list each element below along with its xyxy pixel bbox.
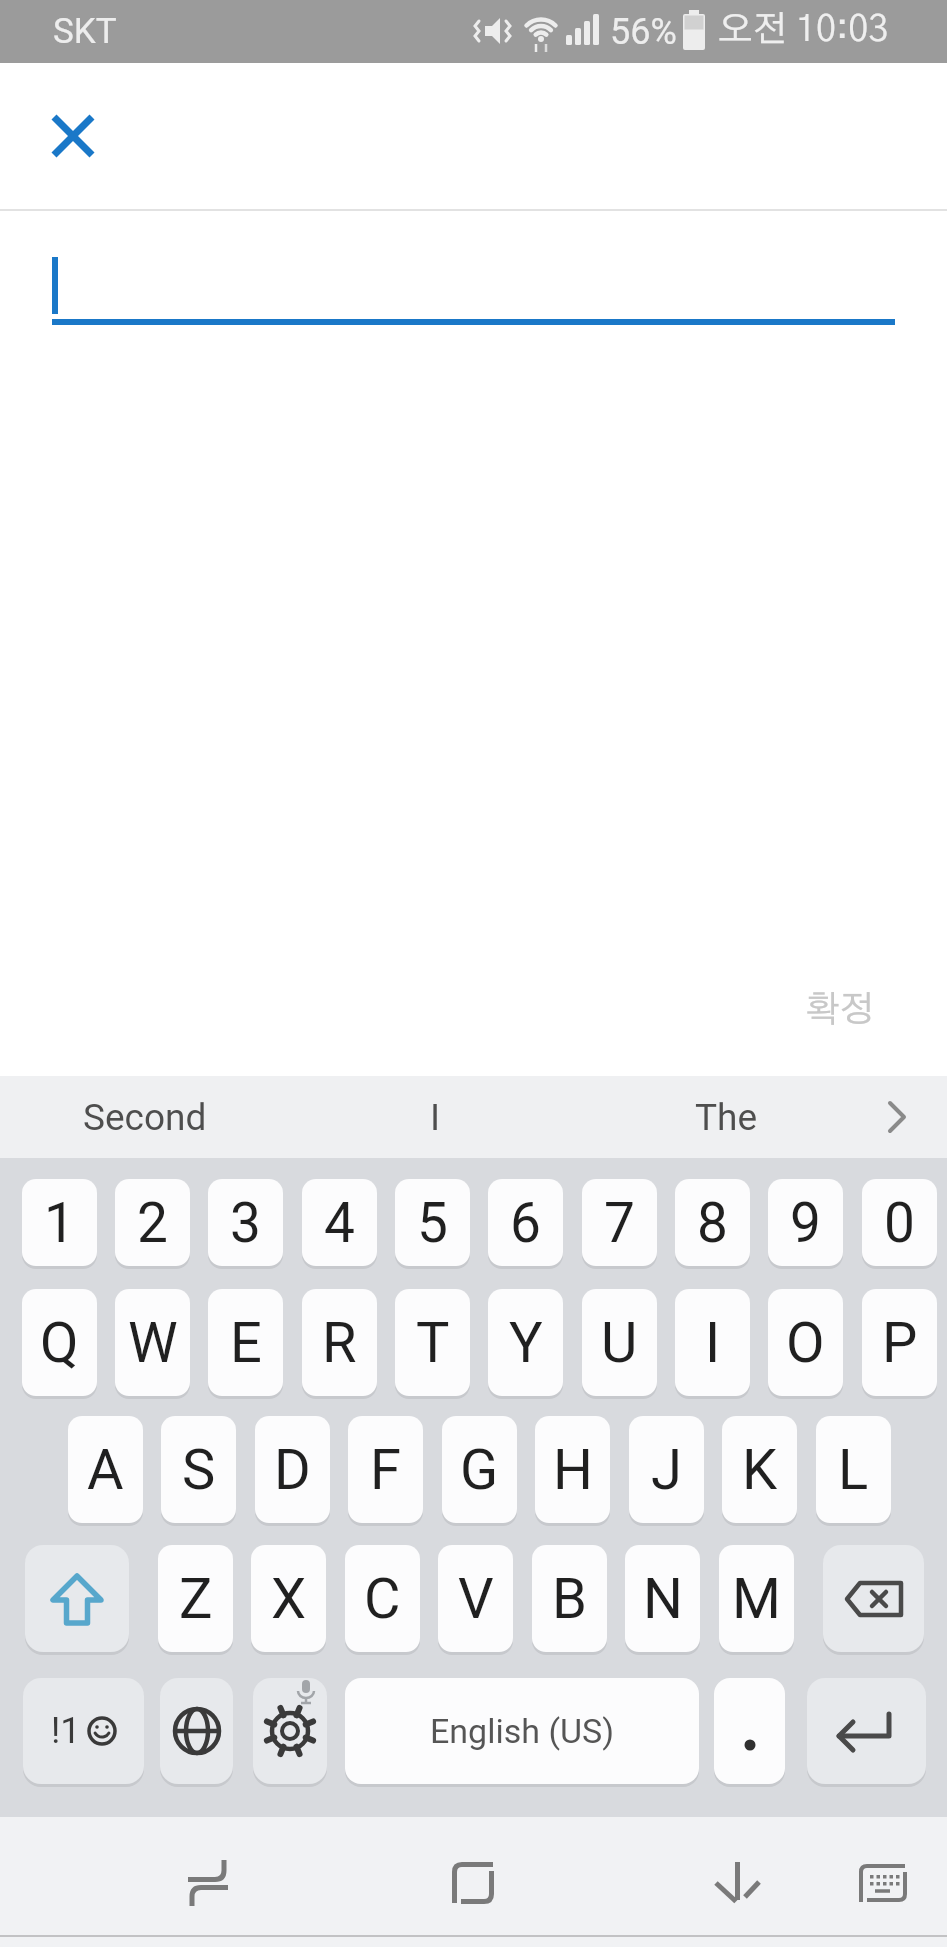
staticText: B <box>552 1566 587 1632</box>
staticText: Second <box>83 1096 207 1139</box>
staticText: English (US) <box>430 1711 615 1751</box>
button[interactable] <box>253 1678 327 1784</box>
button[interactable]: Q <box>22 1289 97 1396</box>
staticText: K <box>742 1437 778 1503</box>
button[interactable]: English (US) <box>345 1678 699 1784</box>
button[interactable]: Z <box>158 1545 233 1652</box>
button[interactable]: F <box>348 1416 423 1523</box>
staticText: A <box>87 1437 124 1503</box>
staticText: 4 <box>324 1191 355 1255</box>
button[interactable]: D <box>255 1416 330 1523</box>
button[interactable]: O <box>768 1289 843 1396</box>
button[interactable]: H <box>535 1416 610 1523</box>
staticText: The <box>695 1096 758 1139</box>
button[interactable]: G <box>442 1416 517 1523</box>
staticText: 8 <box>697 1191 728 1255</box>
staticText: Q <box>40 1310 79 1376</box>
button[interactable]: !1 <box>23 1678 144 1784</box>
staticText: 오전 10:03 <box>718 12 889 48</box>
staticText: X <box>271 1566 307 1632</box>
button[interactable]: L <box>816 1416 891 1523</box>
button[interactable]: 5 <box>395 1179 470 1266</box>
staticText: Y <box>509 1310 543 1376</box>
button[interactable]: 7 <box>582 1179 657 1266</box>
button[interactable]: Y <box>488 1289 563 1396</box>
staticText: L <box>838 1437 869 1503</box>
staticText: M <box>732 1566 781 1632</box>
staticText: 확정 <box>805 992 875 1028</box>
button[interactable]: E <box>208 1289 283 1396</box>
staticText: R <box>322 1310 357 1376</box>
button[interactable]: J <box>629 1416 704 1523</box>
button[interactable] <box>160 1678 233 1784</box>
staticText: U <box>601 1310 638 1376</box>
button[interactable]: T <box>395 1289 470 1396</box>
staticText: F <box>370 1437 401 1503</box>
button[interactable] <box>425 1835 520 1930</box>
staticText: C <box>364 1566 401 1632</box>
button[interactable]: 0 <box>862 1179 937 1266</box>
staticText: 5 <box>417 1191 448 1255</box>
button[interactable]: I <box>675 1289 750 1396</box>
button[interactable]: P <box>862 1289 937 1396</box>
button[interactable]: Second <box>0 1076 290 1158</box>
staticText: S <box>182 1437 216 1503</box>
button[interactable]: 4 <box>302 1179 377 1266</box>
button[interactable]: The <box>581 1076 872 1158</box>
button[interactable]: U <box>582 1289 657 1396</box>
button[interactable] <box>690 1835 785 1930</box>
staticText: G <box>460 1437 499 1503</box>
staticText: V <box>458 1566 494 1632</box>
staticText: W <box>128 1310 178 1376</box>
staticText: 1 <box>44 1191 75 1255</box>
button[interactable]: R <box>302 1289 377 1396</box>
button[interactable] <box>25 1545 129 1652</box>
button[interactable] <box>160 1835 255 1930</box>
staticText: 2 <box>137 1191 168 1255</box>
staticText: T <box>416 1310 450 1376</box>
button[interactable]: 8 <box>675 1179 750 1266</box>
button[interactable]: B <box>532 1545 607 1652</box>
staticText: !1 <box>51 1710 81 1752</box>
button[interactable]: 확정 <box>790 975 890 1045</box>
staticText: O <box>786 1310 825 1376</box>
button[interactable] <box>823 1545 924 1652</box>
button[interactable] <box>36 99 110 173</box>
button[interactable]: A <box>68 1416 143 1523</box>
staticText: I <box>705 1310 721 1376</box>
button[interactable]: W <box>115 1289 190 1396</box>
button[interactable]: S <box>161 1416 236 1523</box>
staticText: 9 <box>790 1191 821 1255</box>
staticText: Z <box>179 1566 213 1632</box>
button[interactable]: 9 <box>768 1179 843 1266</box>
button[interactable]: V <box>438 1545 513 1652</box>
staticText: 3 <box>230 1191 261 1255</box>
button[interactable]: 2 <box>115 1179 190 1266</box>
staticText: 0 <box>884 1191 915 1255</box>
button[interactable]: 3 <box>208 1179 283 1266</box>
button[interactable]: N <box>625 1545 700 1652</box>
button[interactable] <box>872 1076 947 1158</box>
staticText: D <box>274 1437 311 1503</box>
button[interactable]: M <box>719 1545 794 1652</box>
button[interactable] <box>848 1848 918 1918</box>
button[interactable]: K <box>722 1416 797 1523</box>
button[interactable] <box>807 1678 926 1784</box>
staticText: I <box>430 1096 441 1139</box>
staticText: E <box>230 1310 262 1376</box>
button[interactable]: 6 <box>488 1179 563 1266</box>
staticText: P <box>882 1310 918 1376</box>
button[interactable]: I <box>290 1076 581 1158</box>
staticText: 56% <box>610 11 677 53</box>
button[interactable] <box>714 1678 785 1784</box>
button[interactable]: X <box>251 1545 326 1652</box>
staticText: SKT <box>53 11 117 52</box>
staticText: 6 <box>510 1191 541 1255</box>
staticText: N <box>643 1566 683 1632</box>
staticText: H <box>553 1437 593 1503</box>
button[interactable]: 1 <box>22 1179 97 1266</box>
button[interactable]: C <box>345 1545 420 1652</box>
staticText: 7 <box>604 1191 635 1255</box>
staticText: J <box>651 1437 682 1503</box>
